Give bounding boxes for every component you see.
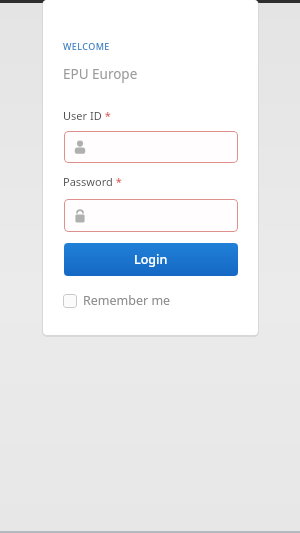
staticText: WELCOME <box>63 40 110 52</box>
staticText: Password <box>63 174 113 189</box>
staticText: Login <box>134 251 168 268</box>
button[interactable]: Login <box>64 243 238 276</box>
button[interactable] <box>64 199 238 232</box>
staticText: User ID <box>63 108 102 123</box>
button[interactable] <box>64 131 238 163</box>
staticText: * <box>102 108 111 123</box>
staticText: * <box>113 174 122 189</box>
staticText: Remember me <box>83 292 171 309</box>
staticText: EPU Europe <box>63 65 138 83</box>
button[interactable]: Remember me <box>63 292 171 309</box>
